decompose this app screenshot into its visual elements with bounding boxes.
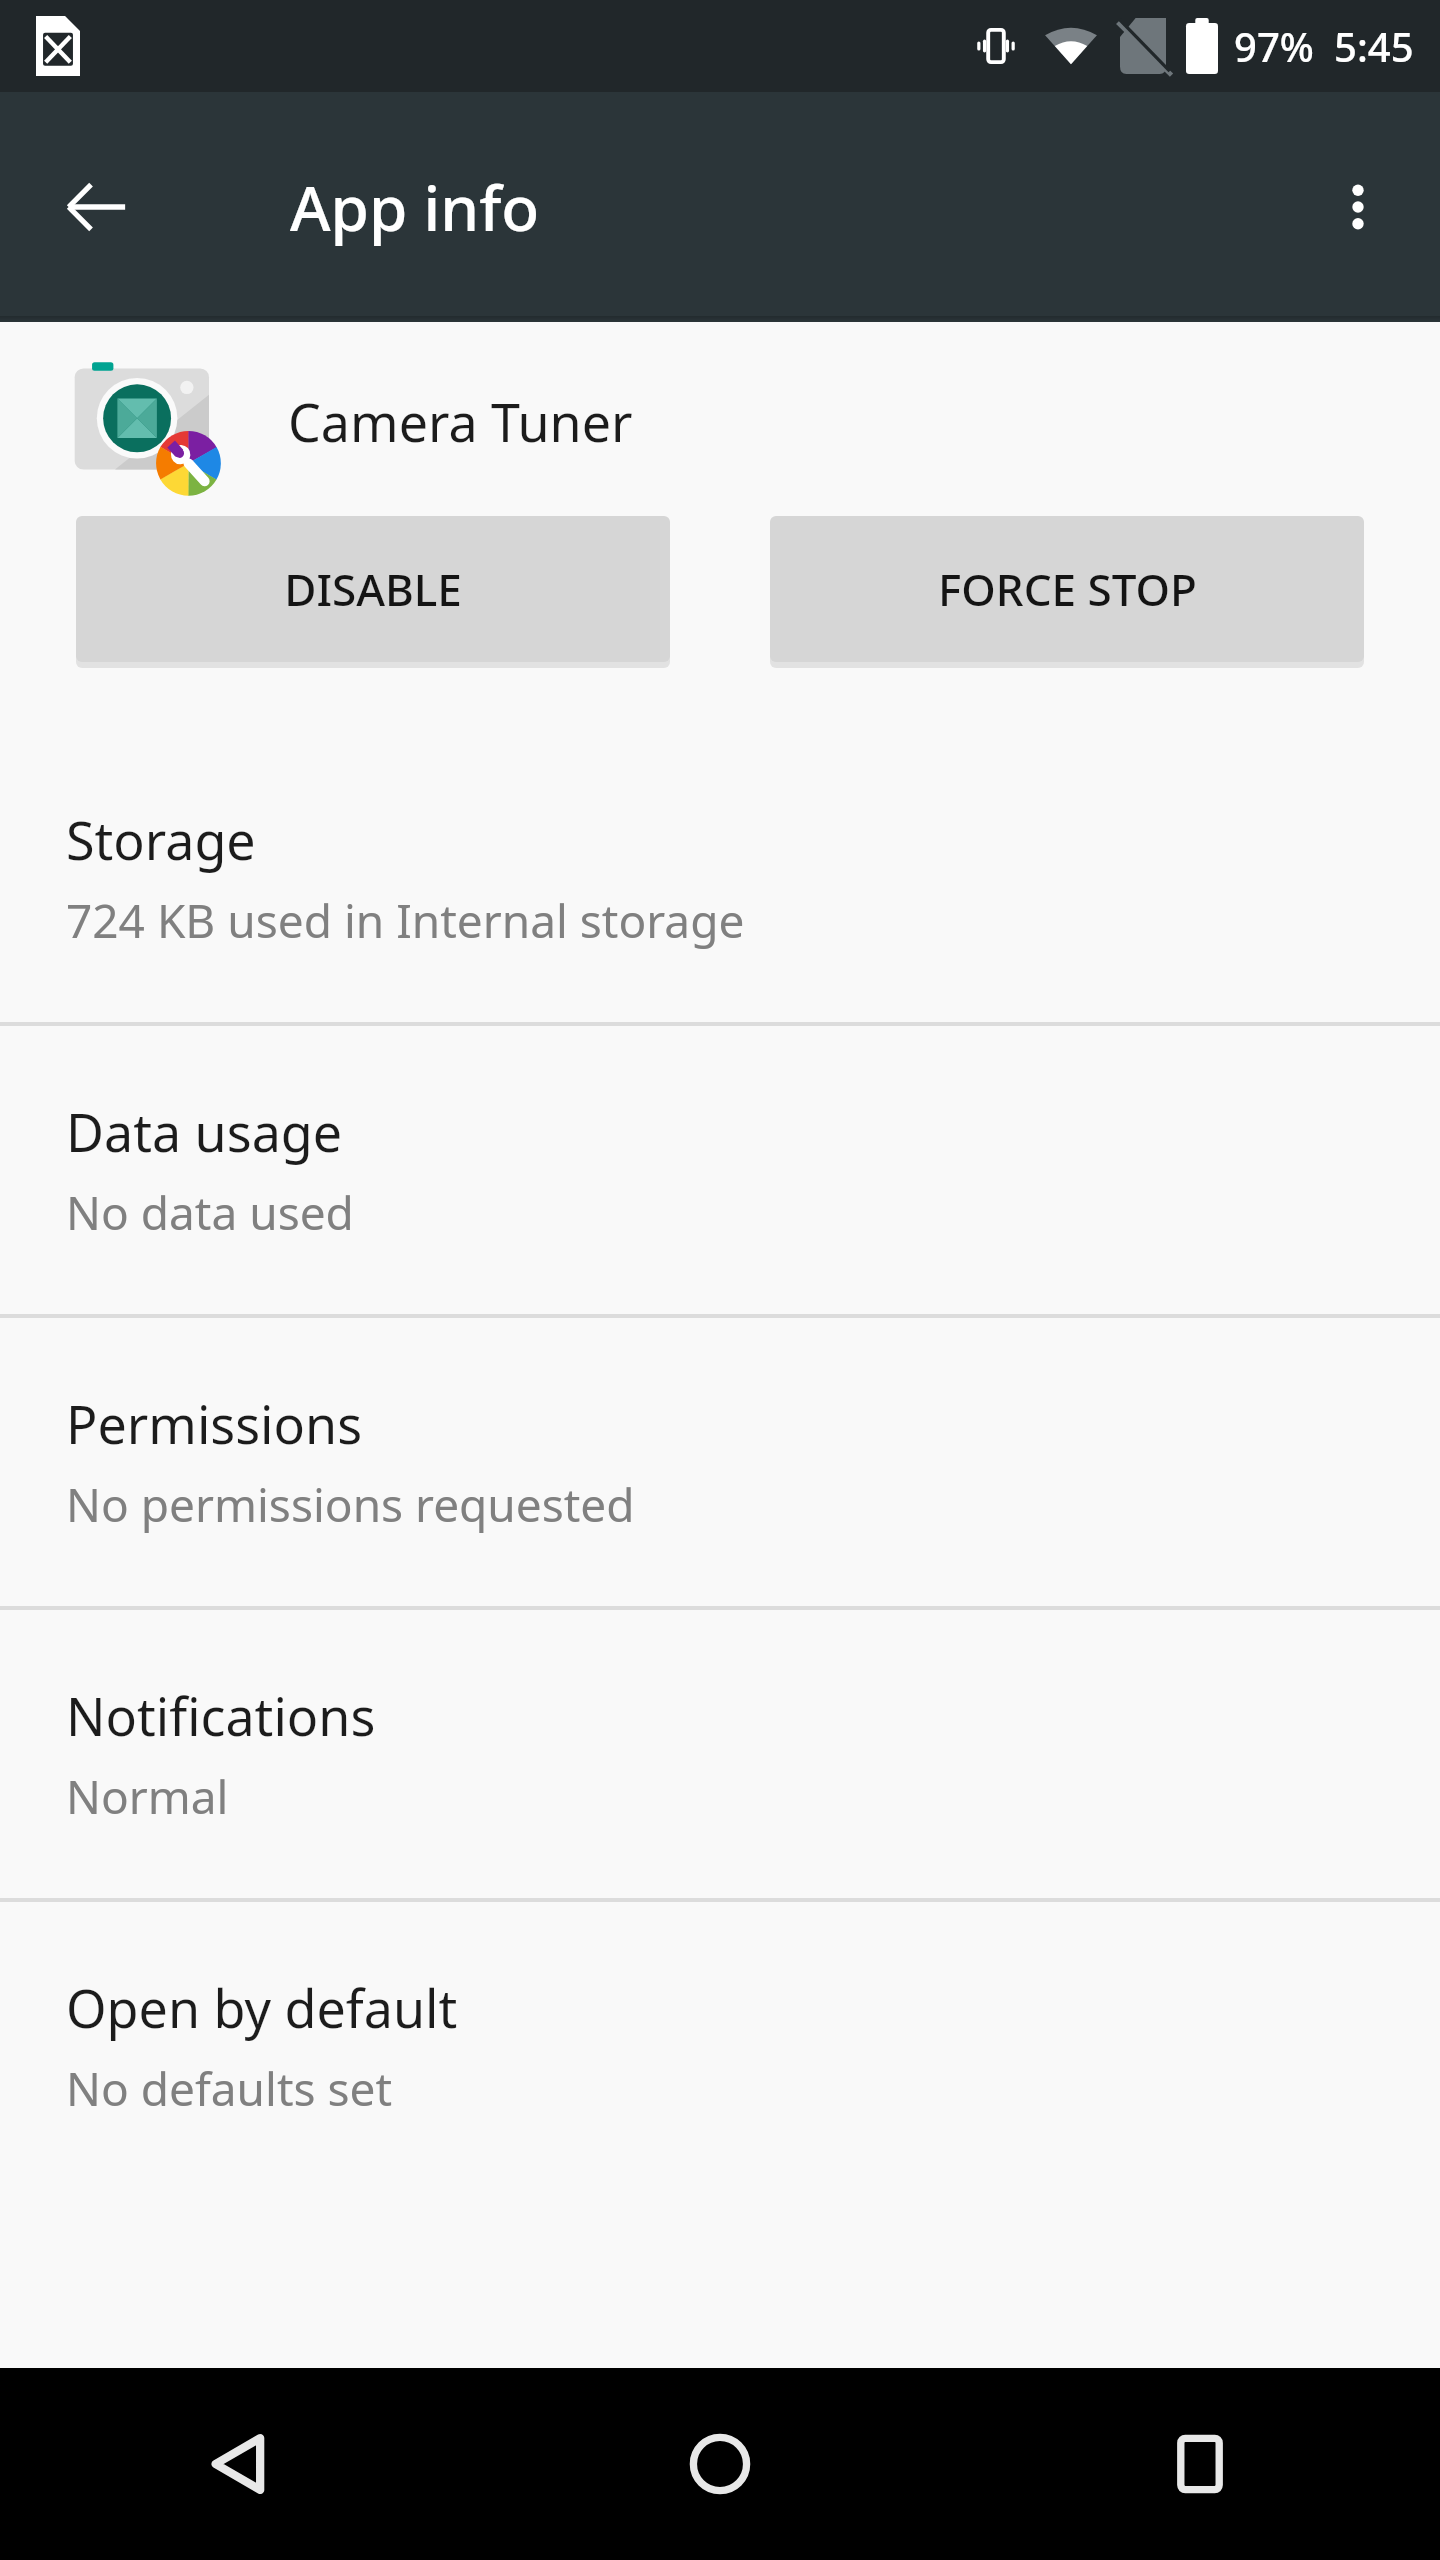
button[interactable]: Recents	[960, 2368, 1440, 2560]
staticText: FORCE STOP	[938, 559, 1197, 619]
staticText: No defaults set	[66, 2057, 393, 2120]
staticText: 97%	[1234, 19, 1314, 73]
button[interactable]: Permissions	[0, 1318, 1440, 1606]
staticText: Permissions	[66, 1388, 363, 1459]
button[interactable]: Storage	[0, 734, 1440, 1022]
staticText: 5:45	[1334, 19, 1414, 73]
button[interactable]: Home	[480, 2368, 960, 2560]
staticText: App info	[290, 165, 540, 249]
button[interactable]: Back	[40, 151, 152, 263]
button[interactable]: More options	[1302, 151, 1414, 263]
staticText: No permissions requested	[66, 1473, 635, 1536]
button[interactable]: Back	[0, 2368, 480, 2560]
button[interactable]: Open by default	[0, 1902, 1440, 2190]
staticText: 724 KB used in Internal storage	[66, 889, 745, 952]
staticText: Open by default	[66, 1972, 458, 2043]
staticText: Data usage	[66, 1096, 343, 1167]
staticText: Storage	[66, 804, 256, 875]
staticText: No data used	[66, 1181, 354, 1244]
button[interactable]: Data usage	[0, 1026, 1440, 1314]
staticText: Normal	[66, 1765, 229, 1828]
button[interactable]: DISABLE	[76, 516, 670, 662]
button[interactable]: Notifications	[0, 1610, 1440, 1898]
button[interactable]: FORCE STOP	[770, 516, 1364, 662]
staticText: DISABLE	[284, 559, 462, 619]
staticText: Camera Tuner	[288, 386, 633, 457]
staticText: Notifications	[66, 1680, 376, 1751]
